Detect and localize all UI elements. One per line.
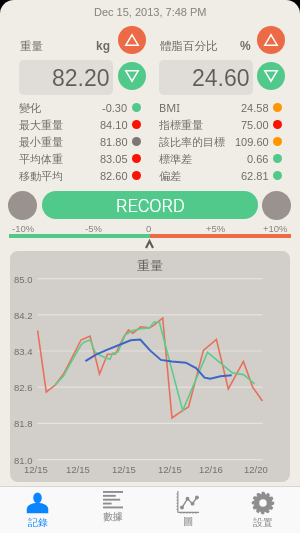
staticText: 82.60 (100, 170, 128, 182)
staticText: 0.66 (247, 153, 269, 165)
button[interactable]: BMI (159, 99, 282, 116)
button[interactable]: 24.60 (159, 60, 253, 95)
staticText: 圖 (183, 515, 193, 528)
staticText: -0.30 (102, 102, 128, 114)
staticText: 81.8 (14, 418, 33, 429)
button[interactable]: 標準差 (159, 150, 282, 167)
staticText: 12/15 (112, 464, 136, 475)
staticText: 109.60 (235, 136, 269, 148)
staticText: 移動平均 (19, 169, 63, 183)
button[interactable]: RECORD (42, 191, 258, 219)
staticText: +10% (263, 223, 288, 234)
staticText: 數據 (103, 510, 123, 523)
staticText: 標準差 (159, 152, 192, 166)
staticText: kg (96, 39, 111, 52)
staticText: 24.58 (241, 102, 269, 114)
button[interactable]: 移動平均 (19, 167, 141, 184)
staticText: 12/16 (199, 464, 223, 475)
button[interactable]: 指標重量 (159, 116, 282, 133)
staticText: 12/15 (24, 464, 48, 475)
staticText: 83.4 (14, 346, 33, 357)
button[interactable]: 圖 (150, 487, 225, 533)
staticText: 82.6 (14, 382, 33, 393)
staticText: BMI (159, 100, 180, 115)
button[interactable]: 數據 (75, 487, 150, 533)
staticText: 12/15 (66, 464, 90, 475)
staticText: 最小重量 (19, 135, 63, 149)
button[interactable]: Decrease 體脂百分比 (257, 62, 285, 90)
button[interactable]: Decrease by 10 percent (8, 191, 37, 220)
staticText: 變化 (19, 101, 41, 115)
button[interactable]: 最大重量 (19, 116, 141, 133)
staticText: 12/15 (158, 464, 182, 475)
staticText: 最大重量 (19, 118, 63, 132)
staticText: -10% (12, 223, 35, 234)
staticText: RECORD (116, 195, 185, 216)
staticText: 偏差 (159, 169, 181, 183)
staticText: Dec 15, 2013, 7:48 PM (94, 6, 207, 18)
staticText: 75.00 (241, 119, 269, 131)
staticText: 82.20 (52, 65, 110, 91)
button[interactable]: 變化 (19, 99, 141, 116)
staticText: 0 (146, 223, 152, 234)
staticText: 體脂百分比 (160, 39, 218, 52)
staticText: 指標重量 (159, 118, 203, 132)
staticText: 該比率的目標 (159, 135, 225, 149)
staticText: 記錄 (28, 516, 48, 529)
button[interactable]: Increase 體脂百分比 (257, 26, 285, 54)
staticText: 85.0 (14, 274, 33, 285)
staticText: +5% (206, 223, 226, 234)
button[interactable]: Increase 重量 (118, 26, 146, 54)
staticText: 84.2 (14, 310, 33, 321)
staticText: 62.81 (241, 170, 269, 182)
button[interactable]: 設置 (225, 487, 300, 533)
staticText: 81.80 (100, 136, 128, 148)
staticText: 84.10 (100, 119, 128, 131)
staticText: 重量 (20, 39, 43, 52)
staticText: % (240, 39, 251, 52)
button[interactable]: 82.20 (19, 60, 113, 95)
staticText: 設置 (253, 516, 273, 529)
button[interactable]: 記錄 (0, 487, 75, 533)
staticText: 81.0 (14, 455, 33, 466)
button[interactable]: 最小重量 (19, 133, 141, 150)
button[interactable]: 平均体重 (19, 150, 141, 167)
button[interactable]: Increase by 10 percent (262, 191, 291, 220)
staticText: 24.60 (192, 65, 250, 91)
staticText: 重量 (137, 257, 163, 273)
staticText: -5% (85, 223, 102, 234)
button[interactable]: 偏差 (159, 167, 282, 184)
button[interactable]: 該比率的目標 (159, 133, 282, 150)
staticText: 12/20 (244, 464, 268, 475)
button[interactable]: Decrease 重量 (118, 62, 146, 90)
staticText: 83.05 (100, 153, 128, 165)
staticText: 平均体重 (19, 152, 63, 166)
